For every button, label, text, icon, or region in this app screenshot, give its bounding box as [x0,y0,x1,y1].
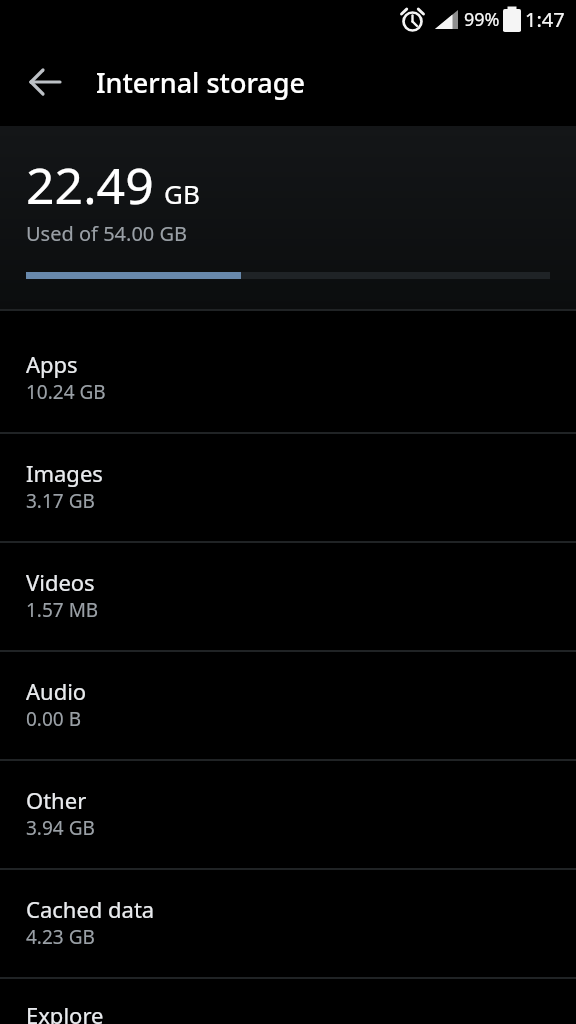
staticText: Audio [26,676,87,706]
staticText: Images [26,458,103,488]
button[interactable] [14,38,78,126]
button[interactable]: Audio [0,652,576,761]
button[interactable]: Apps [0,325,576,434]
button[interactable]: Cached data [0,870,576,979]
staticText: Apps [26,349,78,379]
button[interactable]: Videos [0,543,576,652]
staticText: Other [26,785,87,815]
button[interactable]: Other [0,761,576,870]
staticText: Internal storage [96,64,305,101]
staticText: Videos [26,567,95,597]
staticText: 3.17 GB [26,488,95,514]
staticText: Cached data [26,894,155,924]
staticText: 4.23 GB [26,924,95,950]
staticText: 22.49 [26,151,154,219]
staticText: 0.00 B [26,706,81,732]
staticText: GB [164,176,200,211]
staticText: 3.94 GB [26,815,95,841]
staticText: 1:47 [525,6,565,33]
staticText: Explore [26,1000,104,1024]
staticText: 10.24 GB [26,379,106,405]
button[interactable]: Images [0,434,576,543]
button[interactable]: Explore [0,979,576,1024]
staticText: 99% [464,7,500,32]
staticText: 1.57 MB [26,597,99,623]
staticText: Used of 54.00 GB [26,220,188,247]
